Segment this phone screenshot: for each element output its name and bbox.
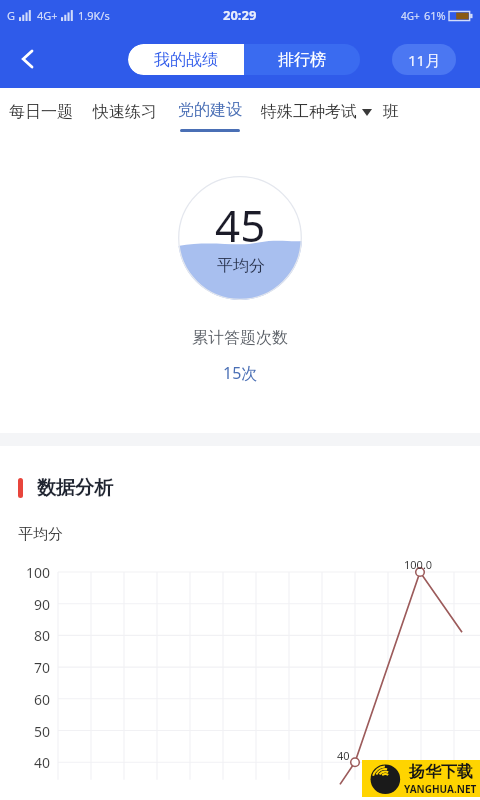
- staticText: 4G+: [37, 8, 58, 23]
- button[interactable]: 每日一题: [0, 100, 82, 124]
- staticText: 每日一题: [9, 102, 73, 122]
- staticText: 20:29: [223, 6, 257, 24]
- staticText: 快速练习: [93, 102, 157, 122]
- staticText: 100: [0, 563, 50, 582]
- button[interactable]: Back: [6, 37, 50, 81]
- staticText: 61%: [424, 8, 446, 23]
- staticText: 平均分: [217, 256, 265, 276]
- staticText: 累计答题次数: [192, 328, 288, 348]
- staticText: 特殊工种考试: [261, 102, 357, 122]
- staticText: 平均分: [18, 525, 63, 544]
- button[interactable]: 排行榜: [244, 44, 360, 75]
- staticText: 70: [0, 658, 50, 677]
- staticText: 100.0: [404, 557, 433, 572]
- staticText: 排行榜: [278, 50, 326, 70]
- staticText: 扬华下载: [409, 762, 473, 782]
- button[interactable]: 班: [381, 100, 399, 122]
- staticText: 15次: [223, 362, 258, 384]
- staticText: G: [7, 8, 16, 23]
- staticText: 党的建设: [178, 100, 242, 120]
- staticText: 45: [215, 195, 266, 255]
- staticText: 4G+: [401, 9, 420, 23]
- button[interactable]: 快速练习: [82, 100, 168, 124]
- button[interactable]: 我的战绩: [128, 44, 244, 75]
- button[interactable]: 特殊工种考试: [252, 100, 381, 124]
- staticText: 40: [337, 748, 350, 763]
- staticText: 班: [383, 102, 399, 122]
- staticText: 60: [0, 690, 50, 709]
- button[interactable]: 党的建设: [168, 100, 252, 132]
- staticText: 数据分析: [37, 476, 113, 500]
- button[interactable]: 11月: [392, 44, 456, 75]
- staticText: YANGHUA.NET: [404, 782, 477, 796]
- staticText: 90: [0, 595, 50, 614]
- staticText: 80: [0, 626, 50, 645]
- staticText: 40: [0, 753, 50, 772]
- staticText: 我的战绩: [154, 50, 218, 70]
- staticText: 11月: [408, 50, 441, 70]
- staticText: 50: [0, 722, 50, 741]
- staticText: 1.9K/s: [78, 8, 110, 23]
